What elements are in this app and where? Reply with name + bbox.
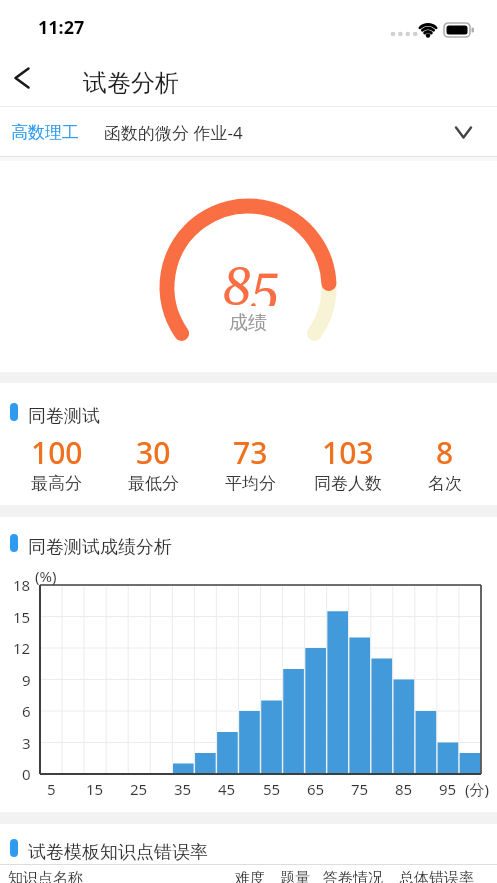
button[interactable]: 高数理工 [0,107,497,156]
staticText: 题量 [280,869,310,883]
button[interactable]: 73 [202,432,299,494]
staticText: 15 [13,607,31,627]
staticText: 65 [307,779,325,799]
button[interactable] [0,47,48,108]
staticText: 55 [263,779,281,799]
staticText: 知识点名称 [8,869,83,883]
staticText: 9 [22,670,31,690]
staticText: (%) [35,566,57,586]
button[interactable]: 8 [396,432,493,494]
staticText: 最低分 [128,473,179,494]
staticText: 同卷人数 [314,473,382,494]
staticText: 18 [13,575,31,595]
staticText: 5 [47,779,56,799]
staticText: 95 [439,779,457,799]
staticText: 12 [13,638,31,658]
staticText: 函数的微分 作业-4 [104,121,243,144]
staticText: 平均分 [225,473,276,494]
staticText: 名次 [428,473,462,494]
staticText: 103 [322,432,374,473]
staticText: 15 [86,779,104,799]
staticText: 总体错误率 [399,869,474,883]
button[interactable]: 103 [299,432,396,494]
button[interactable]: 100 [8,432,105,494]
staticText: 试卷模板知识点错误率 [28,841,208,864]
button[interactable]: 30 [105,432,202,494]
staticText: 73 [233,432,268,473]
staticText: 试卷分析 [83,68,179,98]
staticText: 100 [31,432,83,473]
staticText: 30 [136,432,171,473]
staticText: 高数理工 [11,122,79,143]
staticText: 75 [351,779,369,799]
staticText: 6 [22,701,31,721]
staticText: (分) [465,779,490,799]
staticText: 3 [22,733,31,753]
staticText: 难度 [235,869,265,883]
staticText: 11:27 [38,15,85,40]
staticText: 成绩 [229,311,267,335]
staticText: 35 [174,779,192,799]
staticText: 8 [436,432,454,473]
staticText: 同卷测试成绩分析 [28,536,172,559]
staticText: 85 [221,256,280,306]
staticText: 0 [22,764,31,784]
staticText: 85 [395,779,413,799]
staticText: 同卷测试 [28,405,100,428]
staticText: 答卷情况 [323,869,383,883]
staticText: 最高分 [31,473,82,494]
staticText: 45 [218,779,236,799]
staticText: 25 [130,779,148,799]
